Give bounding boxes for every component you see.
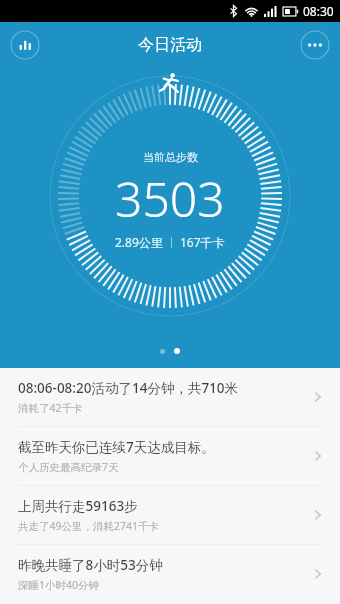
button[interactable]: 上周共行走59163步: [0, 486, 340, 544]
staticText: 消耗了42千卡: [18, 401, 83, 415]
staticText: 共走了49公里，消耗2741千卡: [18, 519, 160, 533]
staticText: 08:30: [303, 3, 334, 19]
staticText: 今日活动: [138, 35, 202, 55]
staticText: 08:06-08:20活动了14分钟，共710米: [18, 379, 239, 397]
button[interactable]: 08:06-08:20活动了14分钟，共710米: [0, 368, 340, 426]
staticText: 截至昨天你已连续7天达成目标。: [18, 438, 215, 456]
staticText: 2.89公里: [115, 234, 163, 250]
staticText: 当前总步数: [143, 150, 198, 164]
button[interactable]: More options: [300, 30, 330, 60]
button[interactable]: 昨晚共睡了8小时53分钟: [0, 545, 340, 603]
staticText: 上周共行走59163步: [18, 497, 138, 515]
staticText: 167千卡: [180, 234, 225, 250]
staticText: 昨晚共睡了8小时53分钟: [18, 556, 163, 574]
button[interactable]: Statistics: [10, 30, 40, 60]
button[interactable]: 截至昨天你已连续7天达成目标。: [0, 427, 340, 485]
staticText: 3503: [115, 166, 225, 231]
staticText: 深睡1小时40分钟: [18, 578, 100, 592]
staticText: 个人历史最高纪录7天: [18, 460, 119, 474]
